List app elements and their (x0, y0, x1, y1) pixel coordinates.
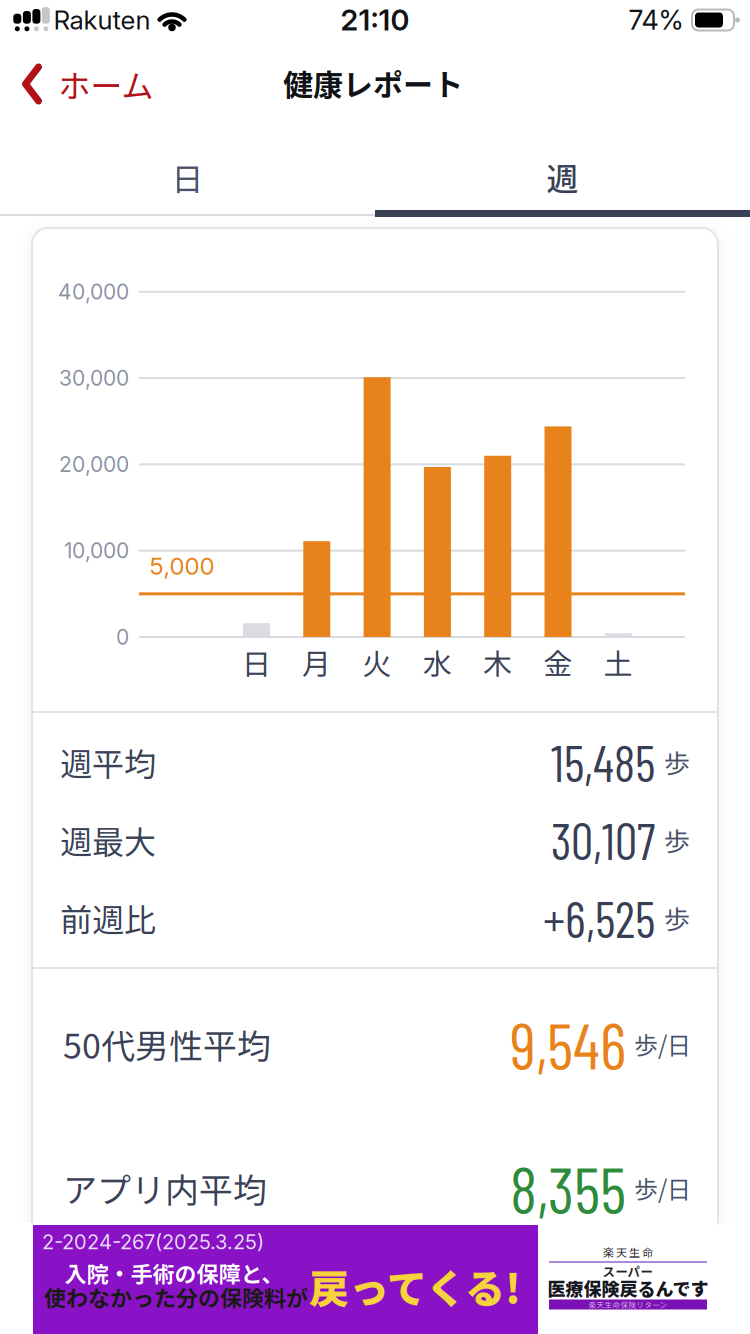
staticText: 50代男性平均 (63, 1019, 271, 1069)
staticText: 15,485 (551, 732, 655, 792)
staticText: 日 (171, 154, 203, 200)
staticText: 水 (423, 641, 452, 683)
staticText: 歩/日 (634, 1027, 691, 1061)
staticText: Rakuten (53, 4, 150, 36)
staticText: 楽天生命保険リターン (588, 1299, 667, 1310)
staticText: 木 (483, 641, 512, 683)
staticText: +6,525 (543, 888, 655, 948)
staticText: 医療保険戻るんです (547, 1275, 708, 1301)
staticText: 30,000 (59, 365, 129, 391)
staticText: 9,546 (510, 1006, 626, 1082)
button[interactable]: 広告: 楽天生命 スーパー医療保険戻るんです (33, 1225, 718, 1334)
staticText: 戻ってくる! (309, 1257, 521, 1315)
staticText: 30,107 (551, 810, 655, 870)
staticText: 入院・手術の保障と、 (64, 1257, 283, 1289)
staticText: 10,000 (64, 538, 129, 563)
staticText: 週最大 (60, 817, 156, 863)
staticText: 5,000 (149, 551, 214, 580)
staticText: ホーム (58, 61, 153, 107)
button[interactable]: 週 (375, 139, 750, 215)
staticText: 使わなかった分の保険料が (44, 1281, 308, 1313)
staticText: 前週比 (60, 895, 156, 941)
staticText: 74% (628, 4, 683, 36)
staticText: 21:10 (340, 2, 409, 38)
staticText: 月 (302, 641, 331, 683)
staticText: 週 (546, 154, 578, 200)
staticText: 歩 (664, 743, 690, 781)
button[interactable]: 日 (0, 139, 375, 215)
staticText: 40,000 (58, 279, 129, 304)
staticText: 歩 (664, 821, 690, 859)
staticText: 金 (543, 641, 572, 683)
staticText: 楽 天 生 命 (603, 1244, 653, 1260)
staticText: スーパー (602, 1262, 653, 1280)
staticText: 歩 (664, 899, 690, 937)
staticText: 火 (363, 641, 392, 683)
staticText: アプリ内平均 (63, 1163, 267, 1213)
staticText: 健康レポート (283, 61, 463, 105)
staticText: 土 (604, 641, 633, 683)
staticText: 週平均 (60, 739, 156, 785)
staticText: 8,355 (510, 1150, 626, 1226)
staticText: 2-2024-267(2025.3.25) (42, 1230, 264, 1254)
button[interactable]: ホーム (22, 61, 153, 107)
staticText: 0 (116, 624, 129, 650)
staticText: 20,000 (59, 452, 129, 477)
staticText: 歩/日 (634, 1171, 691, 1205)
staticText: 日 (242, 641, 271, 683)
